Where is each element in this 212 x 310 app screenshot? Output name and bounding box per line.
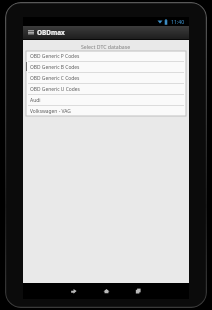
staticText: OBD Generic B Codes [30, 64, 80, 71]
button[interactable]: Volkswagen - VAG [26, 106, 186, 116]
button[interactable]: Audi [26, 95, 186, 105]
staticText: 11:40 [171, 18, 185, 25]
staticText: OBDmax [37, 28, 65, 37]
button[interactable]: Open navigation drawer [26, 28, 35, 37]
staticText: Select DTC database [81, 43, 131, 50]
button[interactable]: OBD Generic C Codes [26, 73, 186, 83]
button[interactable]: OBD Generic P Codes [26, 51, 186, 61]
button[interactable]: Recent apps [131, 284, 145, 298]
button[interactable]: OBD Generic B Codes [26, 62, 186, 72]
staticText: Volkswagen - VAG [30, 108, 71, 115]
button[interactable]: Back [67, 284, 81, 298]
staticText: OBD Generic P Codes [30, 53, 80, 60]
staticText: Audi [30, 97, 41, 104]
button[interactable]: Home [99, 284, 113, 298]
staticText: OBD Generic C Codes [30, 75, 80, 82]
staticText: OBD Generic U Codes [30, 86, 80, 93]
button[interactable]: OBD Generic U Codes [26, 84, 186, 94]
